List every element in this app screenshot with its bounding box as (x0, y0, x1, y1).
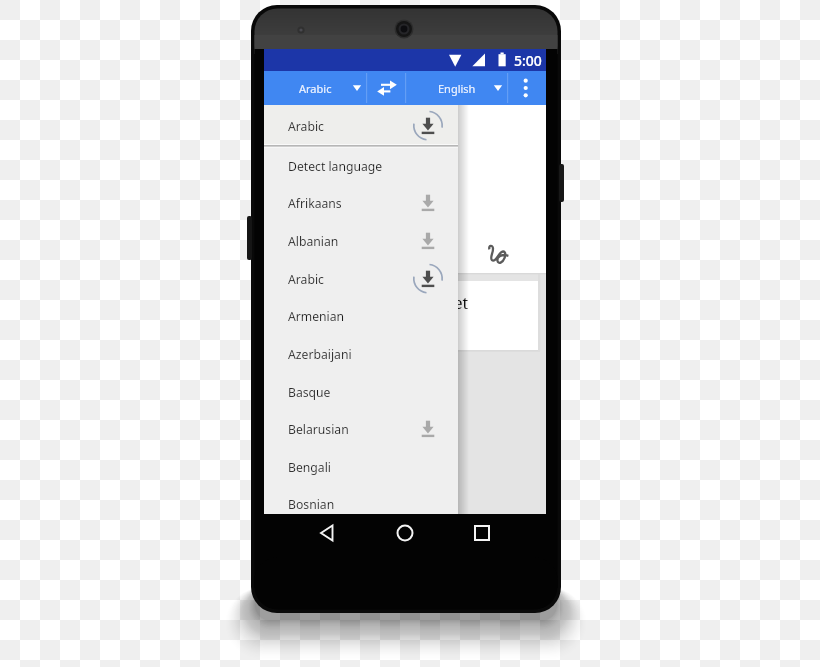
button[interactable]: Bengali (264, 448, 458, 486)
staticText: English (438, 81, 476, 96)
button[interactable]: Azerbaijani (264, 335, 458, 373)
button[interactable]: Arabic (264, 71, 366, 105)
button[interactable]: Detect language (264, 147, 458, 185)
staticText: Alphabet (399, 292, 469, 314)
staticText: Arabic (299, 81, 332, 96)
button[interactable]: English (405, 71, 507, 105)
staticText: Afrikaans (288, 195, 342, 212)
staticText: Belarusian (288, 421, 349, 438)
staticText: 5:00 (514, 51, 542, 70)
button[interactable]: Arabic (264, 106, 458, 146)
button[interactable]: Bosnian (264, 485, 458, 523)
staticText: Armenian (288, 308, 345, 325)
staticText: Bengali (288, 459, 331, 476)
button[interactable]: More options (508, 71, 546, 105)
button[interactable]: Arabic (264, 260, 458, 298)
staticText: Arabic (288, 271, 324, 288)
button[interactable]: Belarusian (264, 410, 458, 448)
button[interactable]: Albanian (264, 222, 458, 260)
staticText: Basque (288, 384, 331, 401)
staticText: Bosnian (288, 496, 335, 513)
button[interactable]: Armenian (264, 297, 458, 335)
staticText: Albanian (288, 233, 339, 250)
staticText: Detect language (288, 158, 383, 175)
button[interactable]: Afrikaans (264, 184, 458, 222)
staticText: Arabic (288, 118, 324, 135)
button[interactable]: Basque (264, 373, 458, 411)
staticText: Azerbaijani (288, 346, 352, 363)
button[interactable]: Swap languages (366, 71, 405, 105)
